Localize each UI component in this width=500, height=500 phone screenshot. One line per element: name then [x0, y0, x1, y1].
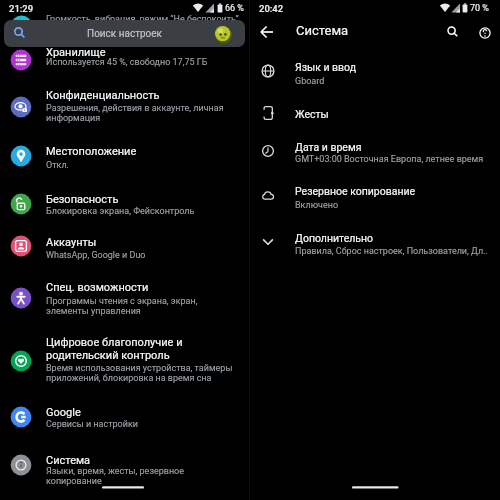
staticText: Жесты: [295, 108, 329, 120]
staticText: 21:29: [9, 3, 34, 14]
staticText: Система: [46, 454, 91, 467]
staticText: Местоположение: [46, 145, 137, 158]
button[interactable]: Дополнительно: [250, 226, 500, 262]
staticText: WhatsApp, Google и Duo: [46, 250, 146, 261]
staticText: Разрешения, действия в аккаунте, личная: [46, 103, 224, 114]
staticText: Безопасность: [46, 193, 119, 206]
staticText: GMT+03:00 Восточная Европа, летнее время: [295, 154, 484, 165]
button[interactable]: Спец. возможности: [0, 275, 250, 325]
staticText: Резервное копирование: [295, 185, 416, 197]
staticText: элементы управления: [46, 306, 141, 317]
staticText: Аккаунты: [46, 236, 97, 249]
staticText: Используется 45 %, свободно 17,75 ГБ: [46, 57, 208, 68]
button[interactable]: Безопасность: [0, 186, 250, 226]
button[interactable]: [257, 22, 277, 42]
staticText: Цифровое благополучие и: [46, 336, 183, 349]
staticText: 70 %: [470, 3, 489, 14]
button[interactable]: Google: [0, 399, 250, 439]
staticText: Правила, Сброс настроек, Пользователи, Д…: [295, 246, 488, 257]
staticText: Время использования устройства, таймеры: [46, 363, 233, 374]
staticText: Язык и ввод: [295, 61, 357, 73]
staticText: приложений, блокировка на время сна: [46, 373, 212, 384]
staticText: 20:42: [259, 3, 284, 14]
staticText: информация: [46, 113, 101, 124]
button[interactable]: Язык и ввод: [250, 55, 500, 89]
button[interactable]: Аккаунты: [0, 230, 250, 270]
staticText: Дополнительно: [295, 232, 374, 244]
button[interactable]: Местоположение: [0, 138, 250, 180]
button[interactable]: Цифровое благополучие и: [0, 330, 250, 392]
button[interactable]: [475, 23, 495, 43]
button[interactable]: [443, 22, 463, 42]
staticText: родительский контроль: [46, 349, 170, 362]
staticText: Откл.: [46, 160, 69, 171]
button[interactable]: Система: [0, 448, 250, 493]
staticText: Конфиденциальность: [46, 89, 160, 102]
button[interactable]: Жесты: [250, 100, 500, 126]
staticText: Блокировка экрана, Фейсконтроль: [46, 206, 195, 217]
staticText: копирование: [46, 476, 102, 487]
staticText: Спец. возможности: [46, 281, 149, 294]
staticText: Поиск настроек: [87, 28, 163, 40]
staticText: Система: [296, 23, 349, 38]
staticText: 66 %: [225, 3, 244, 14]
staticText: Программы чтения с экрана, экран,: [46, 296, 198, 307]
staticText: Сервисы и настройки: [46, 419, 138, 430]
staticText: Хранилище: [46, 46, 106, 59]
staticText: Включено: [295, 200, 339, 211]
staticText: Дата и время: [295, 141, 362, 153]
button[interactable]: Хранилище: [0, 44, 250, 78]
staticText: Gboard: [295, 76, 325, 87]
button[interactable]: Конфиденциальность: [0, 84, 250, 128]
staticText: Языки, время, жесты, резервное: [46, 466, 185, 477]
button[interactable]: Поиск настроек: [4, 20, 245, 47]
staticText: Google: [46, 406, 81, 419]
button[interactable]: Дата и время: [250, 134, 500, 170]
staticText: Громкость, вибрация, режим “Не беспокоит…: [46, 14, 239, 25]
button[interactable]: Резервное копирование: [250, 179, 500, 215]
